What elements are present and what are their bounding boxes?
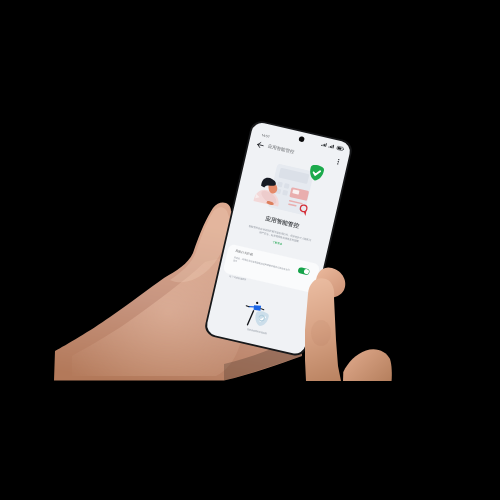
button[interactable]: Learn more (270, 221, 304, 233)
button[interactable]: Risk interception toggle (296, 261, 314, 273)
